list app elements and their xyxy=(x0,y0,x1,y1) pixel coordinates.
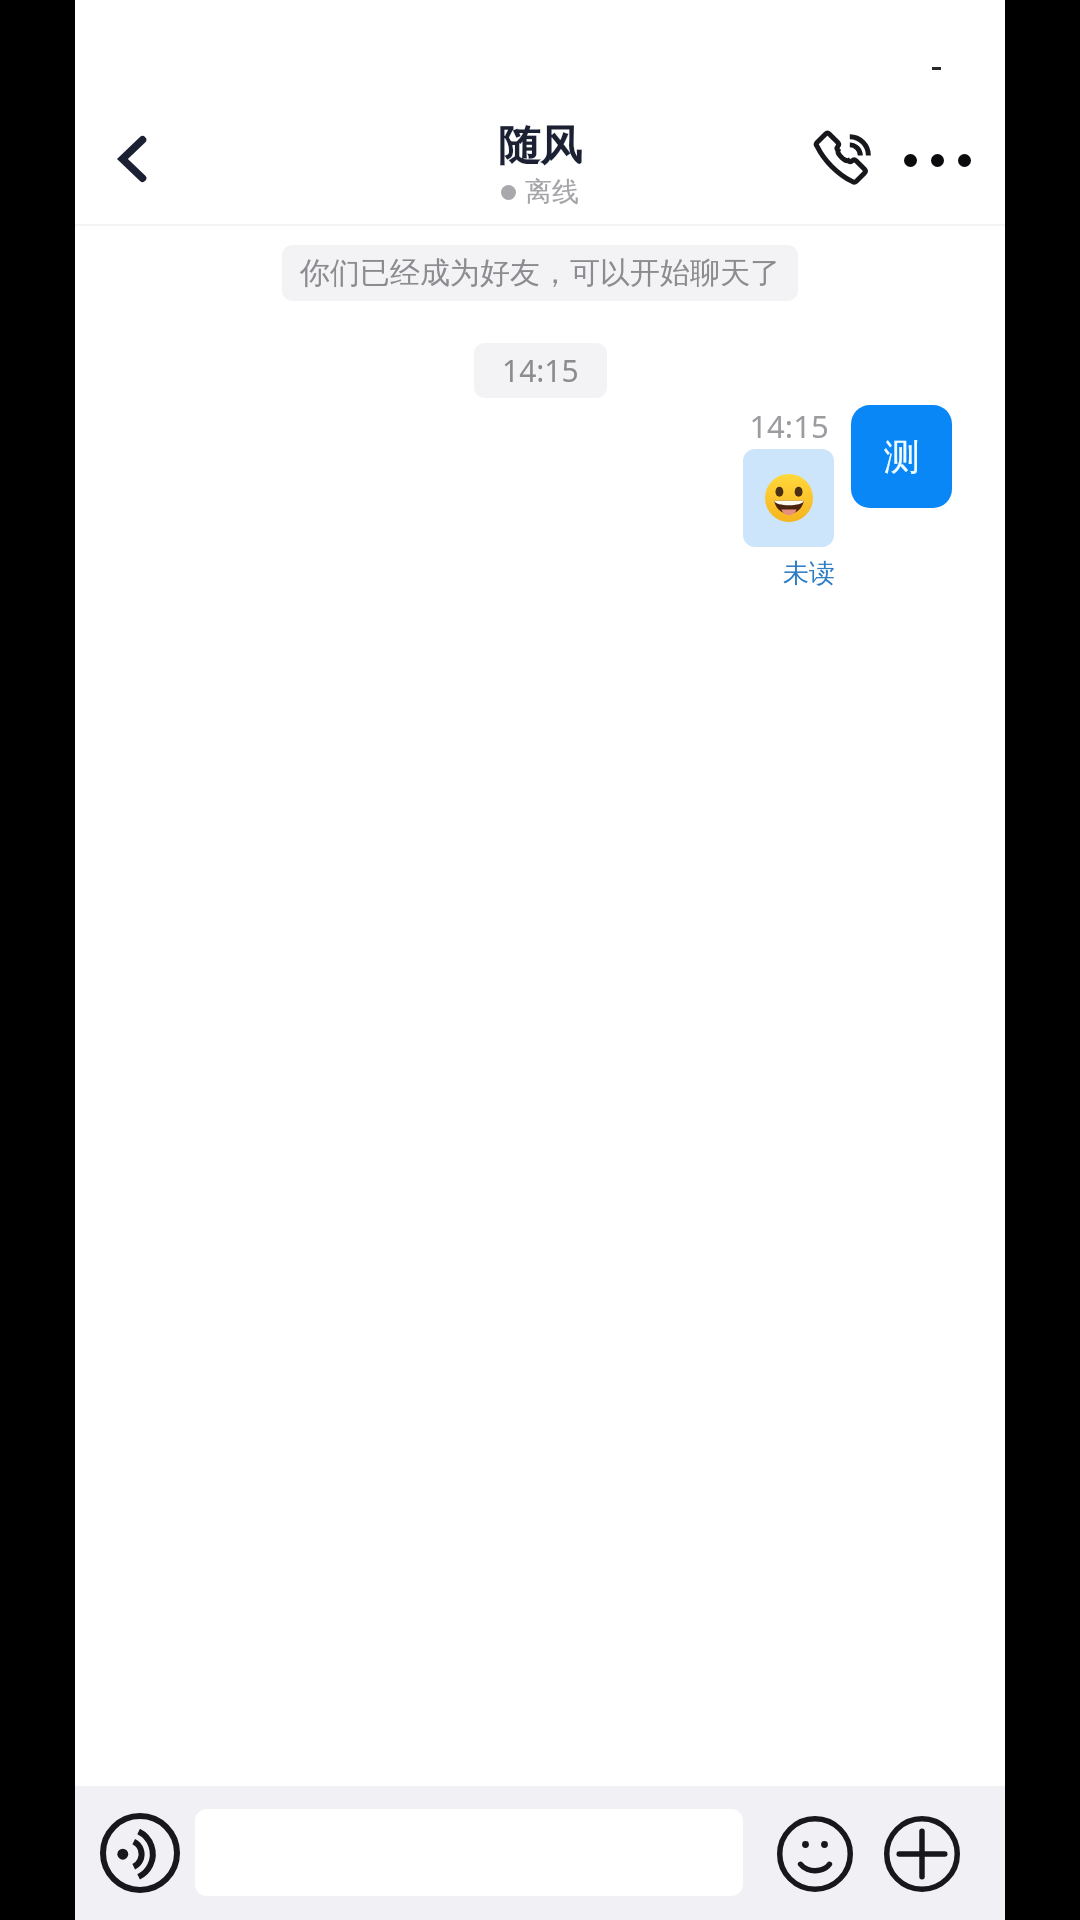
button[interactable]: Back xyxy=(77,104,187,214)
staticText: 14:15 xyxy=(502,350,579,391)
staticText: 测 xyxy=(884,434,920,479)
button[interactable]: 测 xyxy=(851,405,952,508)
staticText: 14:15 xyxy=(718,405,860,447)
button[interactable]: More options xyxy=(887,110,987,210)
staticText: 离线 xyxy=(525,175,579,209)
staticText: 随风 xyxy=(498,120,582,173)
staticText: 你们已经成为好友，可以开始聊天了 xyxy=(300,254,780,292)
staticText: 未读 xyxy=(738,557,880,590)
button[interactable] xyxy=(743,449,834,547)
button[interactable]: Voice call xyxy=(793,98,903,208)
button[interactable]: Add attachment xyxy=(872,1804,972,1904)
button[interactable]: Emoji xyxy=(765,1804,865,1904)
button[interactable]: Voice message xyxy=(90,1803,190,1903)
button[interactable]: 随风 xyxy=(470,112,610,217)
